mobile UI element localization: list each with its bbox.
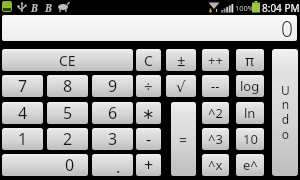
button[interactable]: ^3 bbox=[202, 128, 229, 150]
staticText: ++ bbox=[208, 51, 223, 69]
staticText: C bbox=[144, 51, 153, 70]
staticText: 8 bbox=[63, 75, 73, 97]
button[interactable]: 8 bbox=[47, 75, 88, 97]
button[interactable]: ^x bbox=[202, 154, 229, 176]
button[interactable]: 2 bbox=[47, 128, 88, 150]
staticText: ÷ bbox=[144, 76, 153, 96]
staticText: + bbox=[144, 154, 154, 176]
button[interactable]: . bbox=[92, 154, 133, 176]
staticText: 6 bbox=[108, 102, 118, 124]
button[interactable]: U n d o bbox=[272, 49, 298, 176]
staticText: ln bbox=[244, 104, 256, 122]
button[interactable]: C bbox=[136, 49, 161, 71]
staticText: U n d o bbox=[281, 82, 290, 143]
button[interactable]: ln bbox=[236, 102, 264, 124]
button[interactable]: ∗ bbox=[136, 102, 161, 124]
staticText: √ bbox=[176, 78, 186, 95]
button[interactable]: ± bbox=[166, 49, 196, 71]
button[interactable]: ^2 bbox=[202, 102, 229, 124]
button[interactable]: π bbox=[236, 49, 264, 71]
staticText: 8:04 PM bbox=[262, 1, 300, 15]
staticText: 7 bbox=[18, 75, 28, 97]
button[interactable]: -- bbox=[202, 75, 229, 97]
button[interactable]: 1 bbox=[2, 128, 43, 150]
button[interactable]: e^ bbox=[236, 154, 264, 176]
button[interactable]: 10 bbox=[236, 128, 264, 150]
staticText: . bbox=[116, 156, 121, 176]
button[interactable]: ++ bbox=[202, 49, 229, 71]
staticText: 5 bbox=[63, 102, 73, 124]
staticText: ∗ bbox=[142, 105, 155, 122]
staticText: 2 bbox=[63, 128, 73, 150]
staticText: 10 bbox=[243, 130, 258, 148]
staticText: ± bbox=[177, 50, 186, 70]
staticText: ^x bbox=[208, 156, 223, 174]
staticText: - bbox=[146, 128, 152, 150]
button[interactable]: 9 bbox=[92, 75, 133, 97]
button[interactable]: - bbox=[136, 128, 161, 150]
staticText: -- bbox=[211, 77, 220, 95]
staticText: B bbox=[31, 1, 38, 15]
staticText: = bbox=[179, 130, 188, 149]
staticText: 9 bbox=[108, 75, 118, 97]
button[interactable]: 6 bbox=[92, 102, 133, 124]
staticText: 4 bbox=[18, 102, 28, 124]
staticText: ^3 bbox=[208, 130, 223, 148]
button[interactable]: ÷ bbox=[136, 75, 161, 97]
button[interactable]: 0 bbox=[2, 154, 88, 176]
staticText: log bbox=[240, 77, 260, 95]
button[interactable]: + bbox=[136, 154, 161, 176]
button[interactable]: = bbox=[171, 102, 196, 176]
staticText: 100% bbox=[235, 3, 255, 13]
staticText: π bbox=[245, 51, 255, 70]
staticText: 3 bbox=[108, 128, 118, 150]
staticText: ^2 bbox=[208, 104, 223, 122]
button[interactable]: 5 bbox=[47, 102, 88, 124]
staticText: e^ bbox=[243, 156, 258, 174]
button[interactable]: 4 bbox=[2, 102, 43, 124]
button[interactable]: log bbox=[236, 75, 264, 97]
staticText: 0 bbox=[65, 154, 75, 176]
staticText: CE bbox=[59, 51, 76, 70]
button[interactable]: CE bbox=[2, 49, 133, 71]
button[interactable]: √ bbox=[166, 75, 196, 97]
staticText: B bbox=[45, 1, 52, 15]
button[interactable]: 7 bbox=[2, 75, 43, 97]
staticText: 1 bbox=[18, 128, 28, 150]
button[interactable]: 3 bbox=[92, 128, 133, 150]
staticText: 0 bbox=[281, 15, 293, 41]
